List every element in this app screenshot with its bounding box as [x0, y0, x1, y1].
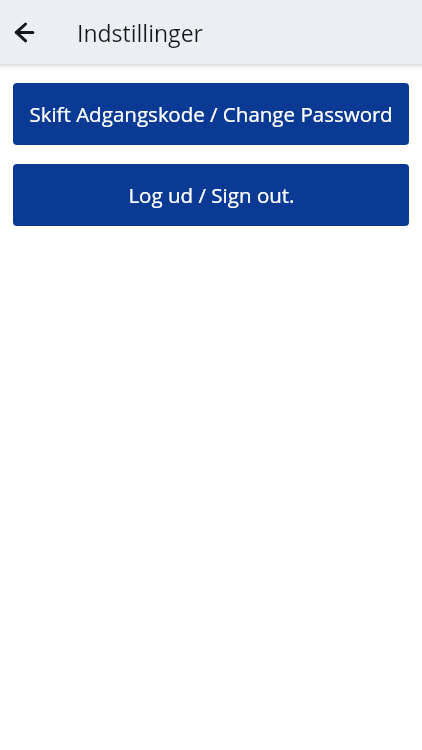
button[interactable]: Skift Adgangskode / Change Password	[13, 83, 409, 145]
button[interactable]: Back	[9, 16, 41, 48]
staticText: Log ud / Sign out.	[128, 181, 295, 209]
button[interactable]: Log ud / Sign out.	[13, 164, 409, 226]
staticText: Indstillinger	[77, 17, 203, 48]
staticText: Skift Adgangskode / Change Password	[29, 100, 393, 128]
